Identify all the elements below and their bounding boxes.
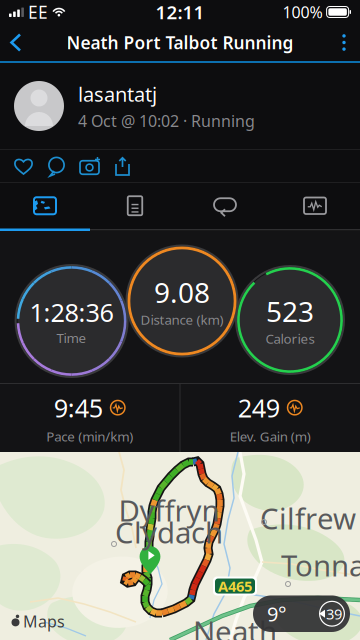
staticText: 1:28:36 [30, 295, 114, 329]
button[interactable]: Laps [180, 183, 270, 228]
staticText: 100% [283, 1, 323, 23]
staticText: 249 [238, 391, 280, 424]
staticText: A465 [218, 576, 252, 596]
staticText: Pace (min/km) [46, 427, 133, 445]
staticText: 9.08 [154, 274, 210, 311]
staticText: Cilfrew [260, 498, 356, 537]
staticText: Clydach [115, 512, 223, 551]
staticText: 523 [266, 293, 314, 330]
staticText: Distance (km) [140, 311, 223, 328]
button[interactable]: Details [90, 183, 180, 228]
staticText: Neath Port Talbot Running [66, 31, 293, 54]
button[interactable]: Activity [0, 183, 90, 228]
button[interactable]: Share [106, 150, 139, 182]
staticText: Maps [23, 611, 65, 632]
button[interactable]: Charts [270, 183, 360, 228]
staticText: 9:45 [54, 391, 103, 424]
staticText: 12:11 [155, 0, 204, 24]
staticText: 4 Oct @ 10:02 · Running [78, 110, 255, 131]
staticText: Elev. Gain (m) [230, 427, 311, 445]
staticText: Dyffryn [118, 490, 219, 529]
staticText: 9° [267, 600, 287, 627]
staticText: Tonna [281, 545, 360, 584]
staticText: Calories [265, 330, 314, 347]
button[interactable]: Add photo [73, 150, 106, 182]
button[interactable]: Comment [40, 150, 73, 182]
staticText: Time [57, 329, 87, 347]
button[interactable]: More options [328, 24, 360, 61]
button[interactable]: Back [0, 24, 32, 61]
staticText: EE [28, 0, 48, 23]
button[interactable]: Like [7, 150, 40, 182]
staticText: 39 [326, 604, 342, 623]
staticText: lasantatj [78, 81, 157, 107]
staticText: Neath [193, 611, 277, 640]
